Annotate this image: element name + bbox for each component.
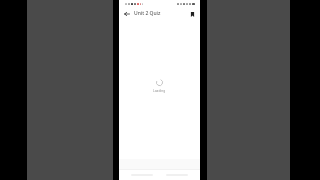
staticText: Loading: [153, 89, 166, 93]
button[interactable]: Bookmark: [187, 9, 197, 19]
button[interactable]: Back: [122, 9, 132, 19]
staticText: Unit 2 Quiz: [134, 10, 187, 17]
